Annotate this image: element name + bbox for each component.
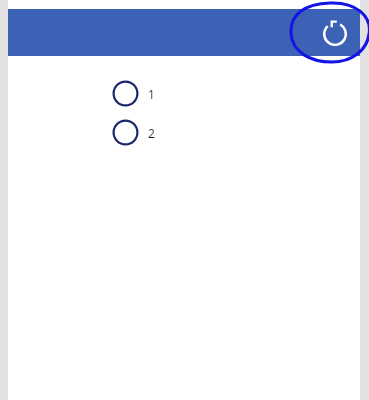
button[interactable]: Refresh bbox=[313, 11, 357, 55]
staticText: 1 bbox=[148, 86, 155, 102]
staticText: 2 bbox=[148, 125, 155, 141]
button[interactable]: 1 bbox=[112, 80, 163, 107]
button[interactable]: 2 bbox=[112, 119, 163, 146]
